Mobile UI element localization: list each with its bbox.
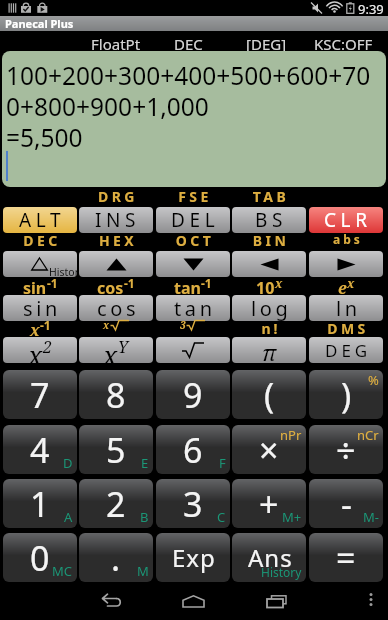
staticText: cos [97,295,140,321]
staticText: 1 [30,481,50,527]
staticText: TAB [234,187,308,206]
button[interactable]: 8 [79,370,153,419]
staticText: 9 [183,372,203,418]
button[interactable]: 5 [79,425,153,474]
staticText: BS [255,207,287,233]
staticText: 6 [183,427,203,473]
button[interactable]: BS [232,207,306,233]
staticText: tan [174,277,201,299]
staticText: MC [52,562,73,580]
staticText: DEC [174,34,203,54]
button[interactable] [79,251,153,277]
staticText: ALT [19,207,66,233]
button[interactable]: π [232,337,306,363]
staticText: x [275,275,283,291]
staticText: 10 [256,277,275,299]
button[interactable]: Ans [232,533,306,582]
staticText: % [368,371,379,389]
staticText: Y [118,337,129,358]
button[interactable]: = [309,533,383,582]
staticText: M+ [282,508,302,526]
staticText: 4 [30,427,50,473]
staticText: log [251,295,292,321]
staticText: DRG [81,187,155,206]
button[interactable]: ALT [3,207,77,233]
staticText: ÷ [336,427,356,473]
staticText: DMS [311,319,385,338]
button[interactable]: 7 [3,370,77,419]
staticText: 8 [106,372,126,418]
button[interactable]: INS [79,207,153,233]
button[interactable]: 6 [156,425,230,474]
staticText: -1 [201,275,212,291]
staticText: DEL [171,207,220,233]
button[interactable]: Recent apps [259,586,295,616]
button[interactable]: Home [176,586,212,616]
button[interactable]: DEL [156,207,230,233]
button[interactable]: 1 [3,479,77,528]
staticText: 100+200+300+400+500+600+70 [6,59,371,92]
button[interactable]: Exp [156,533,230,582]
staticText: [DEG] [246,34,287,54]
button[interactable] [309,251,383,277]
button[interactable]: cos [79,295,153,321]
staticText: OCT [158,231,232,250]
button[interactable]: 9 [156,370,230,419]
button[interactable]: - [309,479,383,528]
staticText: M [137,562,149,580]
button[interactable]: ( [232,370,306,419]
button[interactable]: . [79,533,153,582]
button[interactable]: x [3,337,77,363]
staticText: nCr [357,426,379,444]
button[interactable]: x [79,337,153,363]
staticText: Ans [248,541,293,574]
staticText: =5,500 [6,121,83,154]
staticText: INS [95,207,141,233]
button[interactable] [156,337,230,363]
staticText: + [259,481,279,527]
staticText: x [30,319,40,341]
staticText: tan [174,295,216,321]
button[interactable]: ln [309,295,383,321]
staticText: KSC:OFF [314,34,373,54]
staticText: C [217,508,226,526]
staticText: abs [311,231,385,247]
staticText: -1 [124,275,135,291]
staticText: FSE [158,187,232,206]
button[interactable]: sin [3,295,77,321]
staticText: A [64,508,73,526]
staticText: x [347,275,355,291]
staticText: π [262,337,277,363]
staticText: 9:39 [358,0,384,16]
staticText: 0 [30,535,50,581]
staticText: 3 [180,318,186,332]
button[interactable]: More options [356,586,386,616]
staticText: sin [23,277,47,299]
staticText: nPr [280,426,302,444]
button[interactable] [156,251,230,277]
staticText: DEG [325,339,372,362]
staticText: 3 [183,481,203,527]
button[interactable]: 2 [79,479,153,528]
staticText: D [63,454,73,472]
button[interactable]: ÷ [309,425,383,474]
button[interactable]: 4 [3,425,77,474]
button[interactable]: + [232,479,306,528]
staticText: 5 [106,427,126,473]
staticText: 2 [43,337,53,358]
button[interactable]: ) [309,370,383,419]
button[interactable]: CLR [309,207,383,233]
staticText: . [111,535,121,581]
button[interactable]: Back [94,586,130,616]
button[interactable]: log [232,295,306,321]
button[interactable]: tan [156,295,230,321]
button[interactable]: 0 [3,533,77,582]
staticText: HEX [81,231,155,250]
button[interactable]: × [232,425,306,474]
button[interactable]: 3 [156,479,230,528]
button[interactable]: History [3,251,77,277]
staticText: History [49,265,77,277]
button[interactable]: DEG [309,337,383,363]
button[interactable] [232,251,306,277]
staticText: BIN [234,231,308,250]
